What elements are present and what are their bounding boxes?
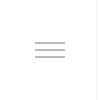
button[interactable]: Menu bbox=[35, 42, 65, 58]
